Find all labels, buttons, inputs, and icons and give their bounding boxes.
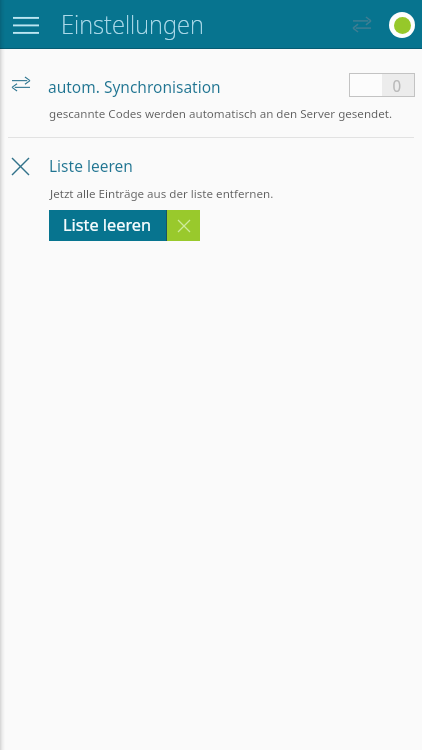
staticText: Jetzt alle Einträge aus der liste entfer… <box>50 186 274 202</box>
staticText: Liste leeren <box>49 155 133 176</box>
button[interactable]: Jetzt synchronisieren <box>335 0 383 48</box>
button[interactable]: autom. Synchronisation <box>0 57 422 123</box>
button[interactable]: Liste leeren <box>49 210 166 241</box>
button[interactable]: autom. Synchronisation ein/aus <box>350 74 414 96</box>
staticText: Einstellungen <box>61 6 205 41</box>
button[interactable]: Abbrechen <box>167 210 200 241</box>
button[interactable]: Liste leeren <box>0 148 422 200</box>
staticText: Liste leeren <box>63 214 152 236</box>
staticText: 0 <box>393 74 401 96</box>
button[interactable]: Verbindungsstatus <box>384 7 420 43</box>
staticText: autom. Synchronisation <box>48 76 221 97</box>
staticText: gescannte Codes werden automatisch an de… <box>49 106 393 122</box>
button[interactable]: Navigationsmenü öffnen <box>2 0 50 48</box>
